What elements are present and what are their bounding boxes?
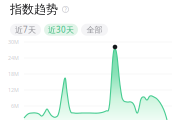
staticText: 全部	[86, 25, 102, 35]
button[interactable]: 近30天	[44, 24, 78, 36]
staticText: 12M	[8, 86, 19, 94]
staticText: 指数趋势	[10, 2, 58, 17]
staticText: 30M	[8, 38, 19, 46]
button[interactable]: 全部	[81, 24, 108, 36]
staticText: 6M	[11, 102, 19, 110]
button[interactable]: 近7天	[10, 24, 41, 36]
staticText: 18M	[8, 70, 19, 78]
button[interactable]: Help	[62, 6, 69, 13]
staticText: 近7天	[15, 24, 36, 35]
staticText: 24M	[8, 54, 19, 62]
staticText: 近30天	[48, 24, 74, 35]
staticText: ?	[64, 6, 66, 13]
